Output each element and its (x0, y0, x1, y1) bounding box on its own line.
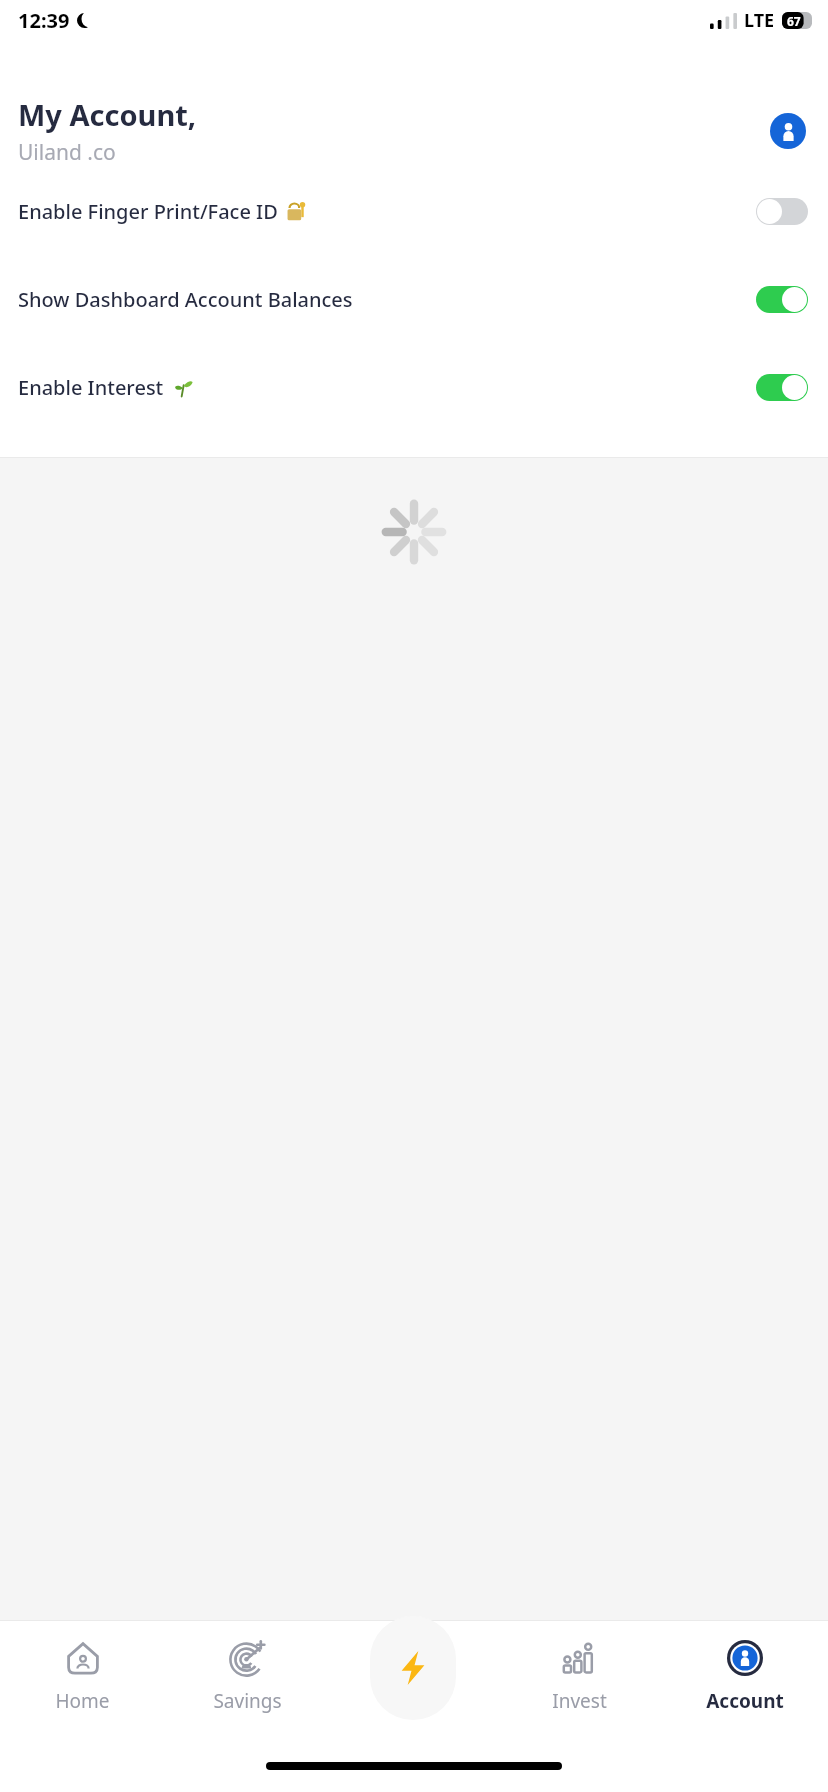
staticText: Account (706, 1688, 784, 1714)
staticText: Enable Interest (18, 374, 164, 401)
staticText: Invest (552, 1688, 607, 1714)
staticText: 12:39 (18, 7, 70, 34)
button[interactable]: Savings (165, 1636, 330, 1716)
button[interactable]: Home (0, 1636, 165, 1716)
button[interactable]: Disabled (756, 198, 808, 225)
button[interactable]: Account (662, 1636, 828, 1716)
staticText: Savings (213, 1688, 282, 1714)
button[interactable]: Enabled (756, 286, 808, 313)
button[interactable]: Quick action (370, 1616, 456, 1720)
button[interactable]: Enabled (756, 374, 808, 401)
staticText: Home (55, 1688, 110, 1714)
staticText: Uiland .co (18, 138, 116, 167)
staticText: 67 (787, 13, 801, 29)
button[interactable]: Invest (496, 1636, 662, 1716)
staticText: Show Dashboard Account Balances (18, 286, 353, 313)
staticText: My Account, (18, 95, 197, 134)
button[interactable]: Profile (770, 113, 806, 149)
staticText: LTE (744, 8, 775, 33)
button[interactable]: Enable Interest (0, 343, 828, 431)
button[interactable]: Enable Finger Print/Face ID (0, 167, 828, 255)
staticText: Enable Finger Print/Face ID (18, 198, 278, 225)
button[interactable]: Show Dashboard Account Balances (0, 255, 828, 343)
